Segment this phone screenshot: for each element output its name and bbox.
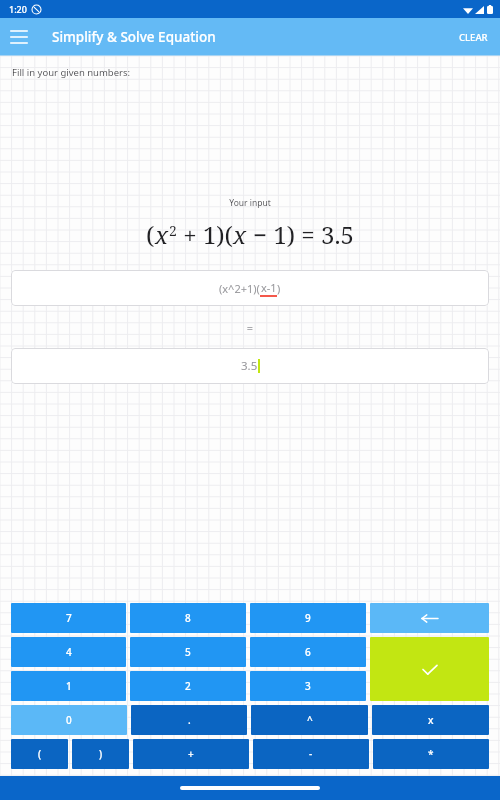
staticText: Fill in your given numbers: [12, 66, 131, 79]
staticText: − 1) = 3.5 [247, 218, 354, 251]
staticText: CLEAR [459, 31, 488, 44]
staticText: (x^2+1)( [219, 281, 260, 296]
staticText: 9 [305, 611, 311, 625]
staticText: 7 [66, 611, 72, 625]
button[interactable]: 3.5 [11, 348, 489, 384]
staticText: Simplify & Solve Equation [52, 28, 216, 46]
button[interactable]: ( [11, 739, 68, 769]
button[interactable]: ^ [251, 705, 368, 735]
staticText: 8 [185, 611, 191, 625]
staticText: + 1)( [177, 218, 233, 251]
button[interactable]: CLEAR [447, 21, 500, 54]
button[interactable]: Backspace [370, 603, 489, 633]
staticText: - [309, 747, 313, 761]
staticText: x [428, 713, 434, 727]
staticText: ) [99, 747, 103, 761]
button[interactable]: 9 [250, 603, 366, 633]
button[interactable]: . [131, 705, 247, 735]
staticText: ) [277, 281, 281, 296]
button[interactable]: + [133, 739, 249, 769]
button[interactable]: Home gesture handle [180, 786, 320, 790]
staticText: x-1 [261, 280, 277, 295]
staticText: Your input [0, 197, 500, 209]
staticText: . [188, 713, 191, 727]
button[interactable]: 3 [250, 671, 366, 701]
staticText: 4 [66, 645, 72, 659]
staticText: 3.5 [241, 358, 258, 374]
button[interactable]: * [373, 739, 489, 769]
staticText: 2 [185, 679, 191, 693]
button[interactable]: 0 [11, 705, 127, 735]
staticText: 6 [305, 645, 311, 659]
staticText: x [155, 218, 169, 251]
staticText: ( [146, 218, 155, 251]
staticText: * [428, 747, 434, 761]
button[interactable]: 5 [130, 637, 246, 667]
staticText: x [233, 218, 247, 251]
staticText: 3 [305, 679, 311, 693]
button[interactable]: x [372, 705, 489, 735]
button[interactable]: 6 [250, 637, 366, 667]
staticText: = [0, 320, 500, 335]
button[interactable]: 8 [130, 603, 246, 633]
staticText: 5 [185, 645, 191, 659]
button[interactable]: - [253, 739, 369, 769]
staticText: 0 [66, 713, 72, 727]
staticText: 2 [169, 221, 177, 240]
staticText: + [188, 747, 194, 761]
button[interactable]: Confirm [370, 637, 489, 701]
button[interactable]: Open navigation menu [0, 18, 38, 56]
button[interactable]: (x^2+1)( [11, 270, 489, 306]
button[interactable]: ) [72, 739, 129, 769]
button[interactable]: 4 [11, 637, 126, 667]
button[interactable]: 7 [11, 603, 126, 633]
staticText: ^ [307, 713, 313, 727]
staticText: ( [38, 747, 42, 761]
staticText: 1:20 [9, 3, 27, 15]
button[interactable]: 1 [11, 671, 126, 701]
staticText: 1 [66, 679, 72, 693]
button[interactable]: 2 [130, 671, 246, 701]
